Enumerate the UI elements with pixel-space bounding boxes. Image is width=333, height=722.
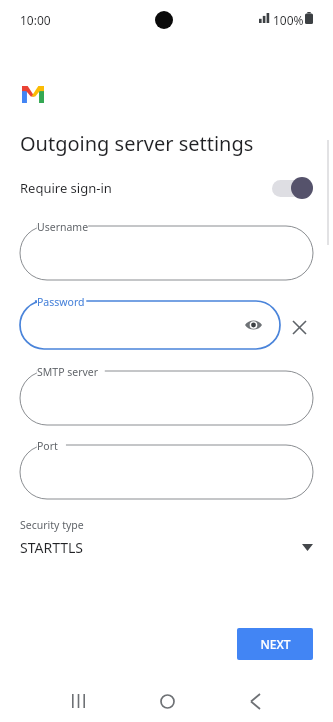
button[interactable]: Home <box>147 681 187 721</box>
staticText: Username <box>37 220 89 234</box>
button[interactable]: Clear password <box>285 313 313 341</box>
staticText: 10:00 <box>20 12 51 28</box>
button[interactable]: Password <box>20 301 280 349</box>
button[interactable]: Require sign-in <box>0 172 333 204</box>
button[interactable]: Recent apps <box>58 681 98 721</box>
button[interactable]: Port <box>20 445 313 499</box>
button[interactable]: Show password <box>240 312 266 338</box>
staticText: STARTTLS <box>20 538 84 557</box>
button[interactable]: NEXT <box>237 628 313 660</box>
staticText: Password <box>37 295 85 309</box>
staticText: Port <box>37 439 58 453</box>
staticText: Outgoing server settings <box>20 130 254 157</box>
staticText: Security type <box>20 518 84 532</box>
button[interactable]: Security type <box>0 518 333 568</box>
staticText: Require sign-in <box>20 179 112 197</box>
button[interactable]: Username <box>20 226 313 280</box>
staticText: SMTP server <box>37 365 99 379</box>
button[interactable]: Require sign-in toggle <box>271 176 315 200</box>
staticText: 100% <box>273 12 304 28</box>
button[interactable]: SMTP server <box>20 371 313 425</box>
button[interactable]: Back <box>235 681 275 721</box>
staticText: NEXT <box>260 636 291 652</box>
